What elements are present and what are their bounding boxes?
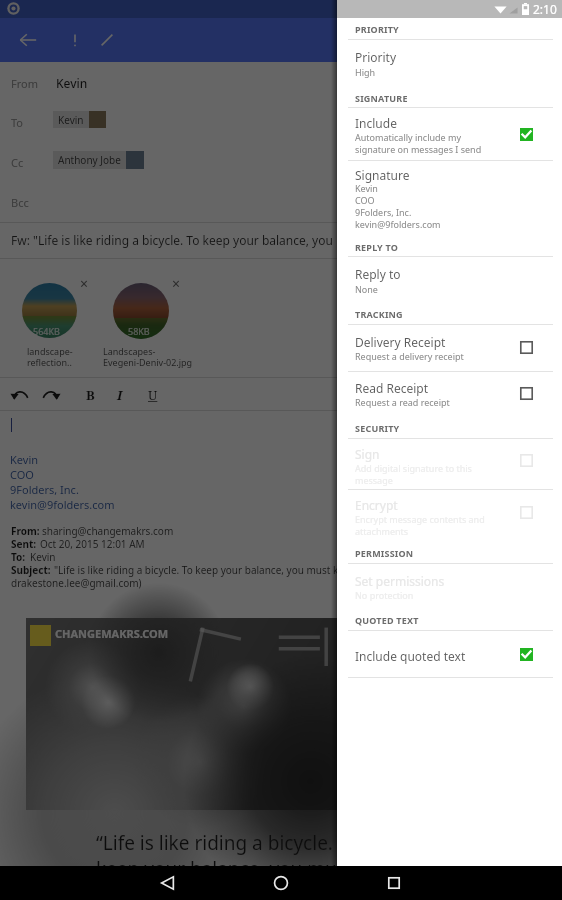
staticText: 58KB <box>128 325 150 337</box>
staticText: REPLY TO <box>355 241 399 253</box>
staticText: TRACKING <box>355 308 403 320</box>
button[interactable]: Underline <box>141 383 165 407</box>
button[interactable]: Redo <box>38 383 62 407</box>
staticText: Automatically include my <box>355 131 462 143</box>
staticText: 9Folders, Inc. <box>355 206 412 218</box>
staticText: Include <box>355 115 397 131</box>
staticText: 564KB <box>33 325 60 337</box>
staticText: attachments <box>355 525 409 537</box>
staticText: COO <box>355 194 375 206</box>
button[interactable]: Edit <box>98 31 116 49</box>
staticText: U <box>148 386 158 404</box>
button[interactable]: Unchecked <box>520 341 533 354</box>
staticText: Sign <box>355 446 380 462</box>
staticText: Request a read receipt <box>355 396 450 408</box>
button[interactable] <box>337 40 562 85</box>
staticText: CHANGEMAKRS.COM <box>55 626 169 641</box>
button[interactable]: Unchecked <box>520 506 533 519</box>
staticText: Bcc <box>11 195 29 210</box>
staticText: I <box>117 386 123 404</box>
button[interactable] <box>337 564 562 609</box>
button[interactable]: Priority <box>66 31 84 49</box>
staticText: drakestone.lee@gmail.com) <box>11 576 142 590</box>
staticText: PERMISSION <box>355 547 414 559</box>
staticText: Landscapes- Evegeni-Deniv-02.jpg <box>103 345 193 369</box>
button[interactable]: Recents <box>376 866 412 900</box>
staticText: SIGNATURE <box>355 92 408 104</box>
staticText: No protection <box>355 589 414 601</box>
staticText: SECURITY <box>355 422 400 434</box>
staticText: × <box>80 274 89 293</box>
staticText: Anthony Jobe <box>58 153 121 167</box>
staticText: High <box>355 66 376 78</box>
button[interactable] <box>337 631 562 677</box>
button[interactable]: Home <box>263 866 299 900</box>
staticText: signature on messages I send <box>355 143 482 155</box>
staticText: kevin@9folders.com <box>355 218 441 230</box>
staticText: landscape- reflection.. <box>27 345 73 369</box>
staticText: None <box>355 283 378 295</box>
staticText: Request a delivery receipt <box>355 350 464 362</box>
staticText: Priority <box>355 49 397 65</box>
button[interactable] <box>337 439 562 489</box>
button[interactable] <box>337 372 562 418</box>
button[interactable]: Checked <box>520 128 533 141</box>
button[interactable]: Bold <box>78 383 102 407</box>
staticText: Encrypt message contents and <box>355 513 485 525</box>
button[interactable]: Unchecked <box>520 454 533 467</box>
staticText: Kevin <box>58 113 84 127</box>
button[interactable]: Undo <box>9 383 33 407</box>
button[interactable]: Attachment 1 <box>22 283 77 338</box>
staticText: Kevin <box>355 182 378 194</box>
button[interactable]: Back <box>149 866 185 900</box>
staticText: PRIORITY <box>355 23 399 35</box>
button[interactable]: Attachment 2 <box>113 283 169 339</box>
staticText: Signature <box>355 167 410 183</box>
staticText: To <box>11 115 24 130</box>
staticText: “Life is like riding a bicycle. To keep … <box>96 830 359 882</box>
staticText: Subject: <box>11 563 51 577</box>
staticText: Cc <box>11 155 24 170</box>
staticText: QUOTED TEXT <box>355 614 419 626</box>
staticText: Oct 20, 2015 12:01 AM <box>40 537 145 551</box>
staticText: "Life is like riding a bicycle. To keep … <box>54 563 345 577</box>
staticText: Kevin COO 9Folders, Inc. kevin@9folders.… <box>10 452 115 512</box>
staticText: From <box>11 76 38 91</box>
staticText: B <box>86 386 95 404</box>
staticText: Reply to <box>355 266 401 282</box>
button[interactable] <box>337 257 562 302</box>
staticText: Include quoted text <box>355 648 466 664</box>
staticText: × <box>172 274 181 293</box>
staticText: Add digital signature to this <box>355 462 472 474</box>
staticText: sharing@changemakrs.com <box>42 524 174 538</box>
staticText: Kevin <box>56 75 88 91</box>
staticText: Delivery Receipt <box>355 334 446 350</box>
staticText: From: <box>11 524 40 538</box>
button[interactable] <box>337 490 562 543</box>
button[interactable]: Checked <box>520 648 533 661</box>
staticText: Encrypt <box>355 497 398 513</box>
button[interactable] <box>337 108 562 160</box>
staticText: Kevin <box>30 550 56 564</box>
staticText: message <box>355 474 393 486</box>
button[interactable]: Back <box>16 28 40 52</box>
button[interactable] <box>337 161 562 245</box>
staticText: Sent: <box>11 537 37 551</box>
staticText: Set permissions <box>355 573 445 589</box>
button[interactable]: Italic <box>108 383 132 407</box>
staticText: To: <box>11 550 26 564</box>
staticText: Read Receipt <box>355 380 429 396</box>
staticText: Fw: "Life is like riding a bicycle. To k… <box>11 232 333 248</box>
staticText: 2:10 <box>533 1 557 17</box>
button[interactable] <box>337 325 562 371</box>
button[interactable]: Unchecked <box>520 387 533 400</box>
